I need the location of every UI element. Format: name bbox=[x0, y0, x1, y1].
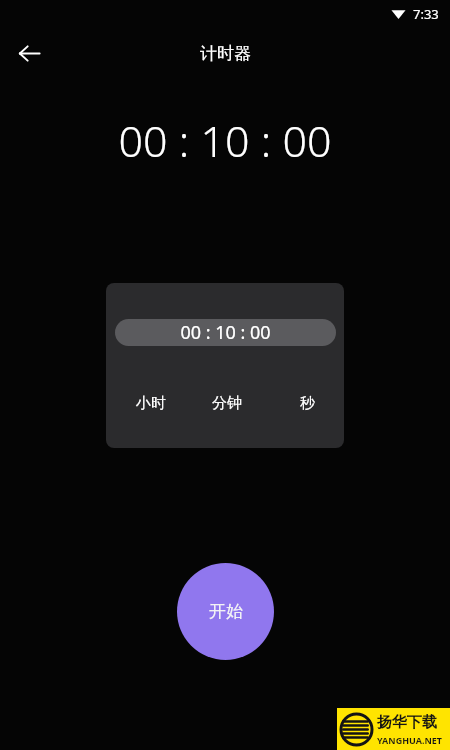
staticText: 开始 bbox=[209, 601, 243, 622]
button[interactable]: 小时 bbox=[120, 390, 182, 416]
staticText: 00 : 10 : 00 bbox=[118, 111, 332, 167]
staticText: 7:33 bbox=[413, 5, 439, 23]
staticText: 00 : 10 : 00 bbox=[180, 320, 271, 345]
staticText: 秒 bbox=[300, 394, 315, 413]
button[interactable]: 秒 bbox=[276, 390, 338, 416]
button[interactable]: 00 : 10 : 00 bbox=[115, 319, 336, 346]
button[interactable]: 开始 bbox=[177, 563, 274, 660]
staticText: 分钟 bbox=[212, 394, 242, 413]
staticText: 计时器 bbox=[200, 43, 251, 64]
staticText: 小时 bbox=[136, 394, 166, 413]
staticText: 扬华下载 bbox=[377, 713, 437, 732]
button[interactable]: Back bbox=[7, 31, 52, 76]
button[interactable]: 分钟 bbox=[196, 390, 258, 416]
staticText: YANGHUA.NET bbox=[377, 734, 443, 746]
